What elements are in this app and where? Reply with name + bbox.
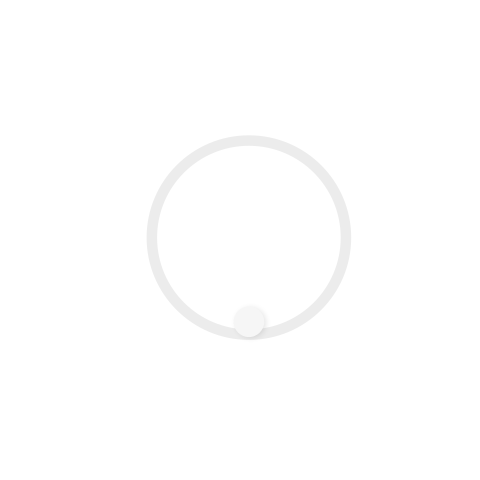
button[interactable]: Dial handle bbox=[234, 306, 264, 337]
